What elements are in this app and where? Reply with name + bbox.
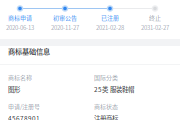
staticText: 商标基础信息 (8, 46, 50, 56)
staticText: 国际分类 (94, 73, 118, 82)
staticText: 初审公告 (53, 13, 77, 22)
staticText: 2021-02-28 (96, 23, 124, 32)
staticText: 注册商标 (94, 114, 118, 120)
staticText: 2020-06-13 (6, 23, 34, 32)
staticText: 2020-11-27 (51, 23, 79, 32)
staticText: 申请/注册号 (8, 102, 40, 111)
staticText: 2031-02-27 (141, 23, 169, 32)
staticText: 图形 (8, 85, 20, 94)
staticText: 25类 服装鞋帽 (94, 85, 134, 94)
staticText: 已注册 (101, 13, 119, 22)
staticText: 商标名称 (8, 73, 32, 82)
staticText: 终止 (149, 13, 161, 22)
staticText: 45678901 (8, 114, 40, 120)
staticText: 商标状态 (94, 102, 118, 111)
staticText: 商标申请 (8, 13, 32, 22)
